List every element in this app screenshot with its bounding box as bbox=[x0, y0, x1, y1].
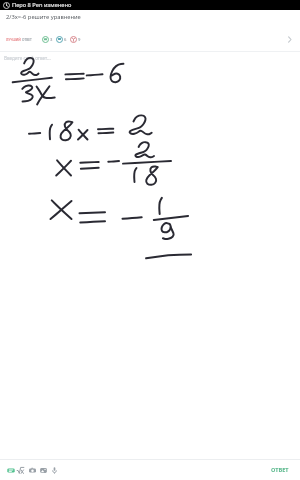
staticText: Перо 8 Pen изменено bbox=[12, 1, 72, 9]
button[interactable]: Timer bbox=[0, 0, 300, 10]
staticText: Введите свой ответ... bbox=[4, 55, 51, 61]
button[interactable]: Text keyboard bbox=[7, 462, 15, 478]
button[interactable]: Likes bbox=[70, 36, 81, 43]
other: Timer bbox=[3, 2, 10, 9]
button[interactable]: Voice input bbox=[49, 462, 60, 478]
staticText: ОТВЕТ bbox=[22, 38, 32, 42]
button[interactable]: Gallery bbox=[38, 462, 49, 478]
staticText: 9 bbox=[78, 37, 81, 43]
button[interactable]: ЛУЧШИЙ bbox=[6, 38, 32, 42]
button[interactable]: Views bbox=[56, 36, 67, 43]
button[interactable]: Answers bbox=[42, 36, 53, 43]
staticText: ЛУЧШИЙ bbox=[6, 38, 21, 42]
button[interactable]: Math keyboard bbox=[15, 462, 26, 478]
staticText: 2/3x=-6 решите уравнение bbox=[6, 13, 81, 21]
staticText: ОТВЕТ bbox=[271, 466, 289, 474]
button[interactable]: Camera bbox=[26, 462, 38, 478]
staticText: 6 bbox=[64, 37, 67, 43]
button[interactable]: Open question bbox=[284, 34, 295, 45]
button[interactable]: ОТВЕТ bbox=[268, 463, 296, 477]
staticText: 3 bbox=[50, 37, 53, 43]
